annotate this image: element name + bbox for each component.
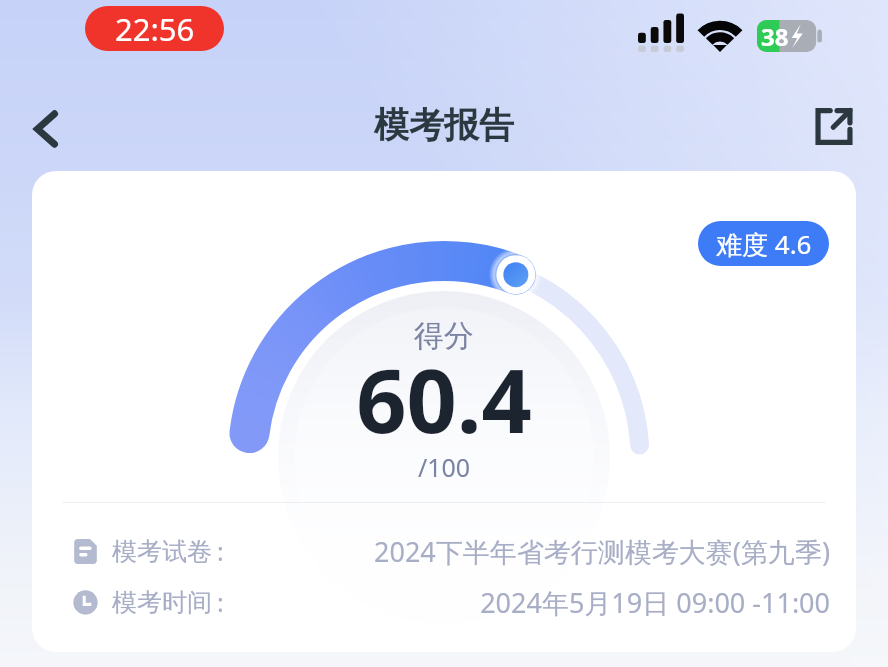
staticText: : [217, 585, 224, 619]
staticText: 22:56 [115, 8, 195, 50]
staticText: 38 [761, 20, 789, 52]
staticText: 2024下半年省考行测模考大赛(第九季) [374, 533, 830, 570]
staticText: 难度 4.6 [716, 226, 812, 262]
staticText: 模考试卷 [112, 536, 212, 567]
staticText: 模考报告 [374, 103, 514, 147]
button[interactable]: Share [799, 91, 869, 161]
button[interactable]: Back [10, 94, 80, 164]
staticText: 得分 [32, 317, 856, 355]
button[interactable]: 难度 4.6 [698, 221, 829, 266]
staticText: 2024年5月19日 09:00 -11:00 [480, 584, 830, 621]
staticText: 模考时间 [112, 587, 212, 618]
staticText: /100 [32, 450, 856, 484]
staticText: : [217, 534, 224, 568]
staticText: 60.4 [32, 339, 856, 459]
